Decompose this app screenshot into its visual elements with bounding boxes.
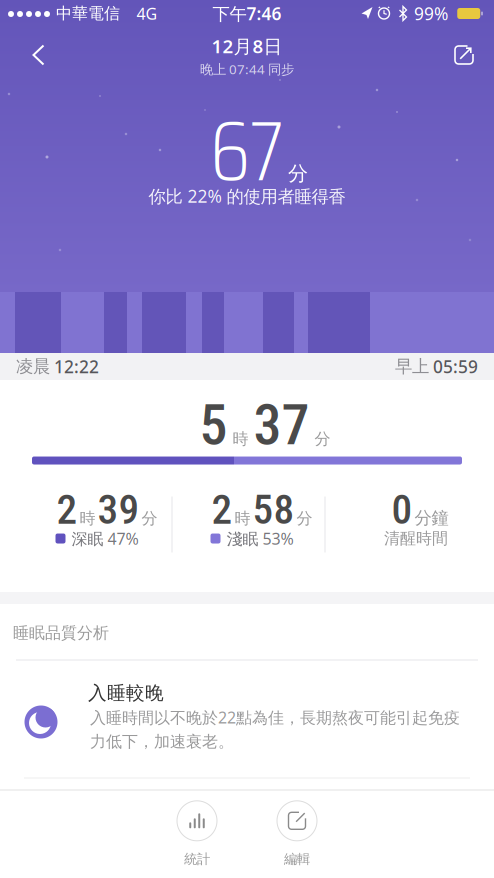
staticText: 5 xyxy=(199,392,227,458)
staticText: 0 xyxy=(391,485,412,534)
staticText: 分 xyxy=(314,429,330,449)
staticText: 分 xyxy=(296,508,312,528)
staticText: 你比 22% 的使用者睡得香 xyxy=(148,184,345,207)
staticText: 12月8日 xyxy=(211,34,282,58)
button[interactable]: 統計 xyxy=(177,801,217,867)
staticText: 晚上 07:44 同步 xyxy=(200,60,294,78)
staticText: 39 xyxy=(97,485,139,534)
staticText: 入睡較晚 xyxy=(88,681,164,704)
staticText: 時 xyxy=(79,508,95,528)
button[interactable] xyxy=(19,31,58,78)
staticText: 分 xyxy=(288,161,308,186)
staticText: 2 xyxy=(56,485,77,534)
staticText: 時 xyxy=(232,429,248,449)
staticText: 凌晨 xyxy=(16,356,50,377)
staticText: 58 xyxy=(252,485,294,534)
staticText: 入睡時間以不晚於22點為佳，長期熬夜可能引起免疫 力低下，加速衰老。 xyxy=(90,706,460,751)
staticText: 分 xyxy=(141,508,157,528)
staticText: 中華電信 xyxy=(56,4,120,23)
staticText: 睡眠品質分析 xyxy=(13,623,109,643)
staticText: 時 xyxy=(234,508,250,528)
button[interactable] xyxy=(443,34,485,76)
staticText: 4G xyxy=(136,3,157,24)
staticText: 下午7:46 xyxy=(212,2,281,25)
staticText: 99% xyxy=(414,2,448,25)
staticText: 清醒時間 xyxy=(384,529,448,548)
staticText: 2 xyxy=(211,485,232,534)
staticText: 編輯 xyxy=(284,851,310,867)
staticText: 37 xyxy=(253,392,309,458)
staticText: 統計 xyxy=(184,851,210,867)
staticText: 深眠 47% xyxy=(71,528,138,549)
staticText: 分鐘 xyxy=(414,507,448,528)
staticText: 05:59 xyxy=(433,355,478,378)
staticText: 早上 xyxy=(395,356,429,377)
button[interactable]: 編輯 xyxy=(277,801,317,867)
staticText: 淺眠 53% xyxy=(226,528,293,549)
staticText: 67 xyxy=(210,85,283,217)
staticText: 12:22 xyxy=(54,355,99,378)
